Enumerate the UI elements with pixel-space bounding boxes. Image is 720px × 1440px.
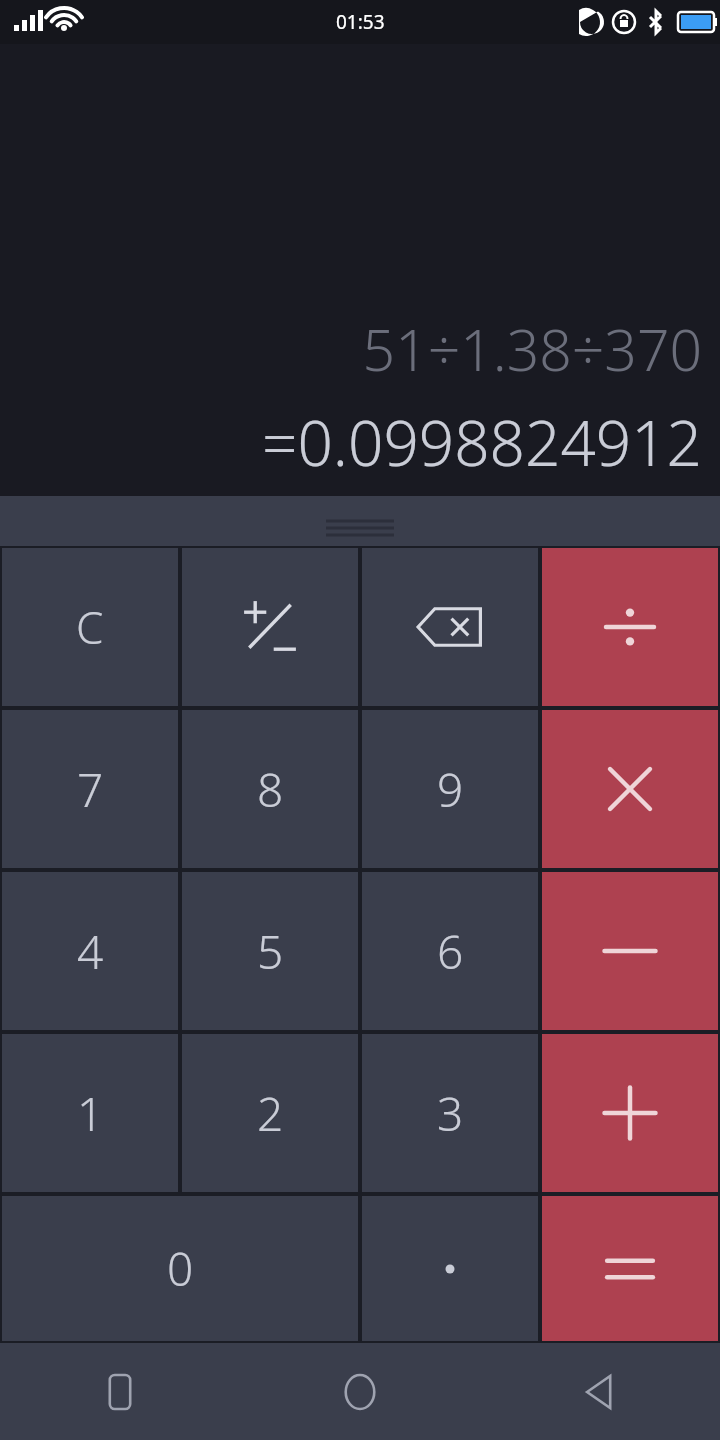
staticText: 6 <box>437 920 464 983</box>
button[interactable]: 9 <box>362 710 538 868</box>
button[interactable]: Decimal point <box>362 1196 538 1341</box>
button[interactable]: Plus minus sign <box>182 548 358 706</box>
button[interactable]: 5 <box>182 872 358 1030</box>
button[interactable]: 2 <box>182 1034 358 1192</box>
button[interactable]: Divide <box>542 548 718 706</box>
button[interactable]: Back <box>480 1343 720 1440</box>
staticText: 0 <box>167 1237 194 1300</box>
staticText: 5 <box>257 920 284 983</box>
button[interactable]: Minus <box>542 872 718 1030</box>
staticText: 9 <box>437 758 464 821</box>
staticText: 4 <box>77 920 104 983</box>
button[interactable]: 3 <box>362 1034 538 1192</box>
button[interactable]: Recents <box>0 1343 240 1440</box>
staticText: 51÷1.38÷370 <box>362 310 702 388</box>
staticText: C <box>76 597 104 657</box>
staticText: 7 <box>77 758 104 821</box>
button[interactable]: Home <box>240 1343 480 1440</box>
staticText: 8 <box>257 758 284 821</box>
button[interactable]: Backspace <box>362 548 538 706</box>
button[interactable]: Plus <box>542 1034 718 1192</box>
button[interactable]: 8 <box>182 710 358 868</box>
button[interactable]: 4 <box>2 872 178 1030</box>
button[interactable]: 6 <box>362 872 538 1030</box>
staticText: 1 <box>77 1082 104 1145</box>
button[interactable]: 0 <box>2 1196 358 1341</box>
button[interactable]: 1 <box>2 1034 178 1192</box>
button[interactable]: 7 <box>2 710 178 868</box>
staticText: 3 <box>437 1082 464 1145</box>
button[interactable]: Multiply <box>542 710 718 868</box>
button[interactable]: C <box>2 548 178 706</box>
button[interactable]: Equals <box>542 1196 718 1341</box>
staticText: 2 <box>257 1082 284 1145</box>
staticText: 01:53 <box>336 9 385 35</box>
staticText: =0.0998824912 <box>262 400 702 484</box>
